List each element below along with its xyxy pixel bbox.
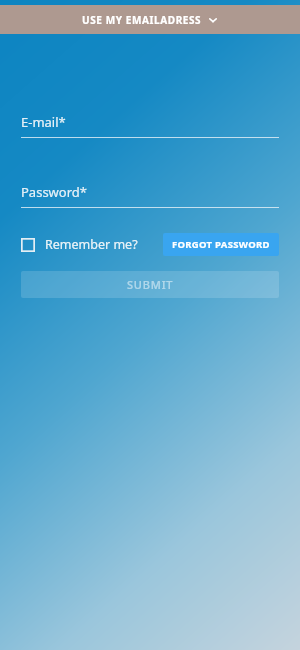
button[interactable]: USE MY EMAILADRESS	[0, 5, 300, 34]
staticText: USE MY EMAILADRESS	[82, 13, 202, 27]
button[interactable]: Remember me?	[21, 236, 138, 253]
staticText: Remember me?	[45, 236, 138, 253]
button[interactable]: SUBMIT	[21, 271, 279, 298]
staticText: Password*	[21, 183, 87, 201]
staticText: FORGOT PASSWORD	[172, 238, 270, 251]
staticText: SUBMIT	[127, 277, 174, 292]
button[interactable]: FORGOT PASSWORD	[163, 233, 279, 256]
staticText: E-mail*	[21, 113, 66, 131]
